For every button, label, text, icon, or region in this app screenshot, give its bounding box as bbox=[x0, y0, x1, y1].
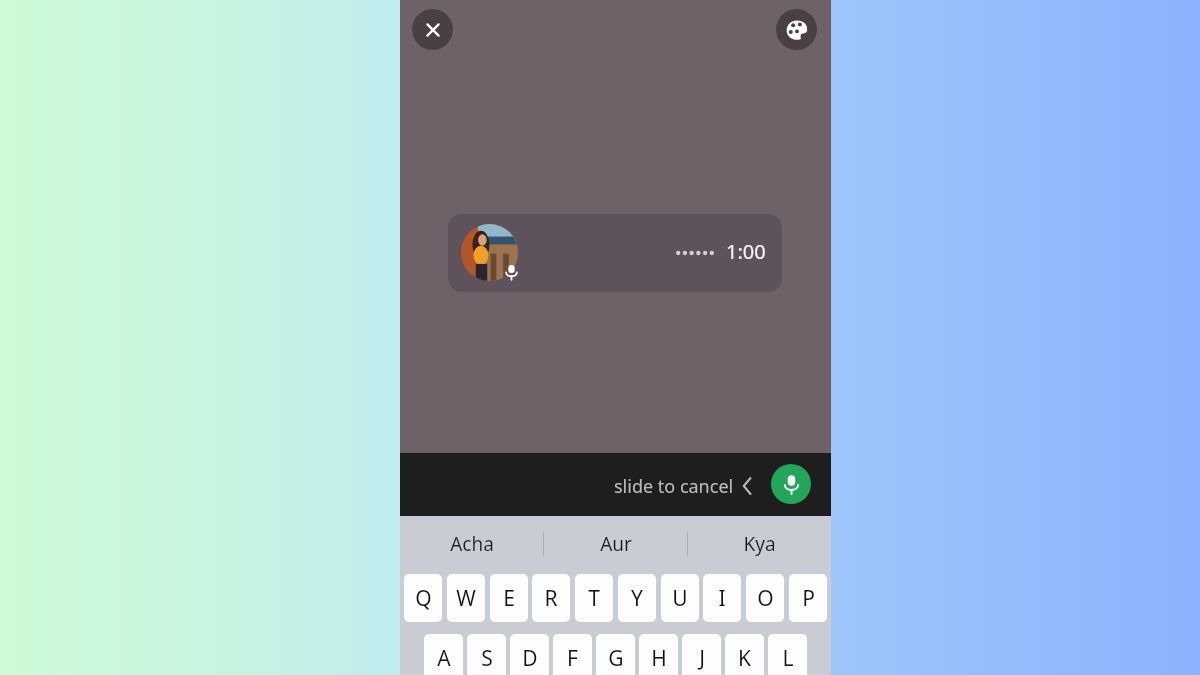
button[interactable]: Kya bbox=[688, 516, 831, 572]
staticText: slide to cancel bbox=[614, 474, 734, 499]
button[interactable]: Q bbox=[404, 574, 442, 622]
staticText: Acha bbox=[450, 531, 494, 557]
staticText: G bbox=[608, 644, 624, 673]
button[interactable]: A bbox=[424, 634, 463, 675]
staticText: E bbox=[503, 584, 515, 613]
button[interactable]: L bbox=[768, 634, 807, 675]
staticText: W bbox=[456, 584, 476, 613]
button[interactable]: F bbox=[553, 634, 592, 675]
button[interactable]: H bbox=[639, 634, 678, 675]
staticText: Y bbox=[631, 584, 643, 613]
button[interactable]: Acha bbox=[400, 516, 543, 572]
staticText: L bbox=[782, 644, 794, 673]
button[interactable]: U bbox=[661, 574, 699, 622]
button[interactable]: E bbox=[490, 574, 528, 622]
button[interactable]: P bbox=[789, 574, 827, 622]
staticText: S bbox=[481, 644, 493, 673]
button[interactable]: D bbox=[510, 634, 549, 675]
button[interactable]: G bbox=[596, 634, 635, 675]
staticText: P bbox=[802, 584, 815, 613]
staticText: O bbox=[757, 584, 774, 613]
staticText: Kya bbox=[743, 531, 776, 557]
staticText: J bbox=[699, 644, 705, 673]
button[interactable]: J bbox=[682, 634, 721, 675]
staticText: 1:00 bbox=[726, 238, 766, 265]
staticText: F bbox=[567, 644, 578, 673]
staticText: R bbox=[544, 584, 558, 613]
staticText: T bbox=[588, 584, 600, 613]
staticText: Q bbox=[415, 584, 432, 613]
button[interactable]: 1:00 bbox=[448, 214, 782, 292]
staticText: I bbox=[718, 584, 726, 613]
staticText: U bbox=[672, 584, 688, 613]
button[interactable]: Record voice message bbox=[771, 464, 811, 504]
button[interactable]: R bbox=[532, 574, 570, 622]
button[interactable]: K bbox=[725, 634, 764, 675]
staticText: D bbox=[522, 644, 538, 673]
button[interactable]: Close bbox=[412, 9, 453, 50]
button[interactable]: O bbox=[746, 574, 784, 622]
button[interactable]: Sticker bbox=[776, 9, 817, 50]
button[interactable]: W bbox=[447, 574, 485, 622]
staticText: Aur bbox=[600, 531, 632, 557]
staticText: H bbox=[651, 644, 667, 673]
button[interactable]: Y bbox=[618, 574, 656, 622]
staticText: K bbox=[738, 644, 751, 673]
button[interactable]: T bbox=[575, 574, 613, 622]
button[interactable]: S bbox=[467, 634, 506, 675]
button[interactable]: I bbox=[703, 574, 741, 622]
button[interactable]: Aur bbox=[544, 516, 687, 572]
staticText: A bbox=[437, 644, 451, 673]
